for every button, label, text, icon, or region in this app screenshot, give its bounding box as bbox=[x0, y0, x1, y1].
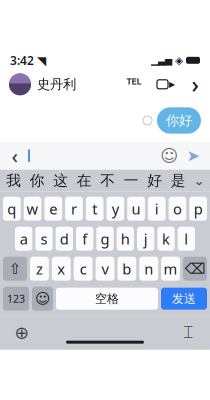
staticText: l bbox=[184, 229, 188, 248]
staticText: x bbox=[57, 259, 65, 278]
button[interactable]: 发送 bbox=[161, 288, 207, 310]
button[interactable]: o bbox=[169, 197, 186, 221]
staticText: 发送 bbox=[172, 291, 196, 306]
button[interactable]: More candidates bbox=[190, 170, 208, 192]
staticText: w bbox=[27, 199, 39, 218]
button[interactable]: 一 bbox=[119, 170, 143, 192]
staticText: n bbox=[144, 259, 153, 278]
button[interactable]: s bbox=[35, 227, 53, 251]
staticText: ☺ bbox=[160, 146, 178, 166]
staticText: 你好 bbox=[166, 112, 192, 129]
staticText: ⊕ bbox=[14, 323, 29, 343]
button[interactable]: m bbox=[161, 257, 180, 281]
staticText: k bbox=[162, 229, 170, 248]
button[interactable]: f bbox=[76, 227, 93, 251]
staticText: ⌄ bbox=[193, 173, 204, 188]
button[interactable]: d bbox=[56, 227, 73, 251]
staticText: d bbox=[60, 229, 69, 248]
staticText: ➤ bbox=[186, 147, 199, 165]
button[interactable]: l bbox=[178, 227, 195, 251]
staticText: q bbox=[7, 199, 16, 218]
staticText: i bbox=[155, 199, 159, 218]
staticText: ▁▃▅ bbox=[151, 55, 172, 66]
staticText: e bbox=[49, 199, 57, 218]
button[interactable]: j bbox=[137, 227, 154, 251]
staticText: y bbox=[112, 199, 119, 218]
staticText: m bbox=[164, 259, 178, 278]
staticText: ⇧ bbox=[9, 260, 21, 277]
staticText: o bbox=[173, 199, 182, 218]
staticText: 史丹利 bbox=[37, 76, 76, 92]
button[interactable]: 不 bbox=[96, 170, 119, 192]
staticText: s bbox=[40, 229, 47, 248]
button[interactable]: Delete bbox=[183, 257, 207, 281]
staticText: p bbox=[194, 199, 203, 218]
button[interactable]: a bbox=[15, 227, 32, 251]
button[interactable]: Video call bbox=[156, 75, 176, 93]
button[interactable]: Switch keyboard bbox=[12, 323, 32, 343]
staticText: f bbox=[82, 229, 87, 248]
staticText: z bbox=[36, 259, 43, 278]
staticText: ◈ bbox=[175, 54, 183, 66]
button[interactable]: Emoji bbox=[160, 147, 178, 165]
staticText: › bbox=[191, 69, 198, 99]
button[interactable]: Send bbox=[184, 147, 202, 165]
staticText: 这 bbox=[53, 172, 68, 190]
staticText: 空格 bbox=[95, 291, 119, 306]
button[interactable]: p bbox=[189, 197, 207, 221]
button[interactable]: n bbox=[139, 257, 158, 281]
staticText: ⌶ bbox=[183, 324, 193, 341]
button[interactable]: Dictation bbox=[178, 323, 198, 343]
button[interactable]: 是 bbox=[166, 170, 190, 192]
button[interactable]: x bbox=[52, 257, 71, 281]
button[interactable]: v bbox=[96, 257, 114, 281]
staticText: 我 bbox=[6, 172, 21, 190]
button[interactable]: y bbox=[106, 197, 124, 221]
button[interactable]: 你 bbox=[25, 170, 49, 192]
staticText: ☺ bbox=[35, 290, 50, 307]
button[interactable]: z bbox=[30, 257, 49, 281]
button[interactable]: b bbox=[117, 257, 136, 281]
button[interactable]: u bbox=[127, 197, 145, 221]
button[interactable]: k bbox=[157, 227, 175, 251]
staticText: 123 bbox=[7, 292, 25, 306]
staticText: 一 bbox=[124, 172, 139, 190]
button[interactable]: More bbox=[189, 75, 201, 93]
button[interactable]: e bbox=[44, 197, 62, 221]
staticText: b bbox=[122, 259, 131, 278]
staticText: c bbox=[80, 259, 87, 278]
button[interactable]: Shift bbox=[3, 257, 27, 281]
staticText: 不 bbox=[100, 172, 115, 190]
button[interactable]: 在 bbox=[72, 170, 96, 192]
staticText: 你 bbox=[30, 172, 45, 190]
button[interactable]: 好 bbox=[143, 170, 166, 192]
staticText: 在 bbox=[77, 172, 92, 190]
staticText: r bbox=[71, 199, 77, 218]
button[interactable]: g bbox=[96, 227, 114, 251]
button[interactable]: Back bbox=[8, 146, 22, 166]
staticText: a bbox=[20, 229, 28, 248]
button[interactable]: h bbox=[117, 227, 134, 251]
button[interactable]: Numbers bbox=[3, 287, 29, 311]
button[interactable]: t bbox=[86, 197, 103, 221]
button[interactable]: Voice call bbox=[125, 75, 143, 93]
staticText: u bbox=[132, 199, 141, 218]
button[interactable]: 史丹利 bbox=[9, 73, 76, 95]
button[interactable]: c bbox=[74, 257, 93, 281]
button[interactable]: i bbox=[148, 197, 166, 221]
staticText: 好 bbox=[147, 172, 162, 190]
staticText: v bbox=[101, 259, 108, 278]
button[interactable]: q bbox=[3, 197, 21, 221]
staticText: j bbox=[144, 229, 148, 248]
button[interactable]: r bbox=[65, 197, 83, 221]
staticText: 是 bbox=[171, 172, 186, 190]
button[interactable]: 空格 bbox=[56, 288, 158, 310]
button[interactable]: w bbox=[24, 197, 41, 221]
staticText: ⌫ bbox=[184, 260, 205, 277]
button[interactable]: 这 bbox=[49, 170, 72, 192]
staticText: g bbox=[100, 229, 109, 248]
button[interactable]: 我 bbox=[2, 170, 25, 192]
button[interactable]: Emoji bbox=[32, 287, 53, 311]
staticText: 3:42 ◥ bbox=[10, 52, 46, 68]
staticText: ▶ bbox=[169, 80, 175, 89]
